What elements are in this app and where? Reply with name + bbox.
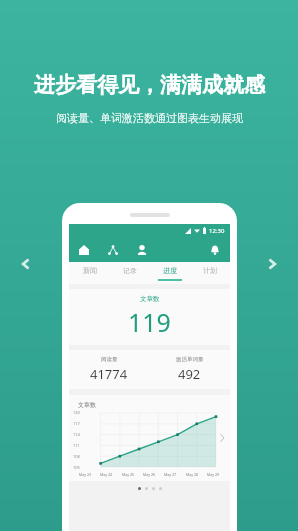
- button[interactable]: Profile: [134, 242, 150, 258]
- staticText: 114: [73, 432, 80, 437]
- button[interactable]: Network: [105, 242, 121, 258]
- button[interactable]: Next: [260, 252, 284, 276]
- staticText: May 26: [143, 472, 156, 477]
- button[interactable]: 进度: [150, 262, 190, 284]
- staticText: 阅读量、单词激活数通过图表生动展现: [56, 111, 243, 125]
- staticText: 108: [73, 454, 80, 459]
- staticText: May 28: [186, 472, 199, 477]
- button[interactable]: 计划: [190, 262, 230, 284]
- staticText: 进步看得见，满满成就感: [34, 72, 265, 98]
- button[interactable]: Home: [76, 242, 92, 258]
- staticText: May 27: [164, 472, 177, 477]
- staticText: 阅读量: [101, 356, 118, 363]
- staticText: 文章数: [78, 401, 96, 409]
- button[interactable]: Notifications: [207, 242, 223, 258]
- button[interactable]: 阅读量: [69, 356, 149, 383]
- staticText: 新闻: [83, 266, 97, 275]
- staticText: May 29: [207, 472, 220, 477]
- staticText: 文章数: [140, 295, 160, 303]
- button[interactable]: 记录: [110, 262, 150, 284]
- staticText: 计划: [203, 266, 217, 275]
- staticText: 激活单词量: [176, 356, 204, 363]
- button[interactable]: [152, 487, 155, 490]
- staticText: May 24: [100, 472, 113, 477]
- staticText: May 25: [122, 472, 135, 477]
- staticText: 105: [73, 465, 80, 470]
- staticText: 41774: [90, 365, 128, 383]
- staticText: 12:30: [209, 227, 225, 235]
- staticText: 进度: [163, 266, 177, 275]
- button[interactable]: 新闻: [69, 262, 110, 284]
- button[interactable]: [138, 487, 141, 490]
- staticText: May 23: [79, 472, 92, 477]
- button[interactable]: [145, 487, 148, 490]
- staticText: 119: [128, 305, 171, 339]
- staticText: 492: [178, 365, 201, 383]
- staticText: 记录: [123, 266, 137, 275]
- staticText: 117: [73, 421, 80, 426]
- staticText: 120: [73, 410, 80, 415]
- staticText: 111: [73, 443, 80, 448]
- button[interactable]: More charts: [216, 432, 228, 444]
- button[interactable]: 激活单词量: [149, 356, 230, 383]
- button[interactable]: Previous: [14, 252, 38, 276]
- button[interactable]: [159, 487, 162, 490]
